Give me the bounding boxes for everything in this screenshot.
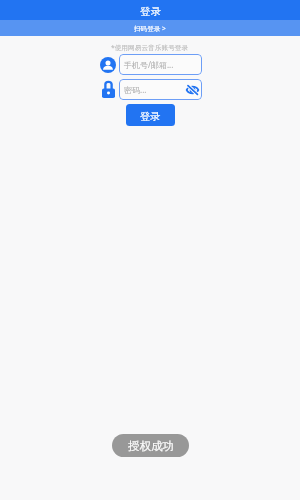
staticText: 手机号/邮箱... (124, 59, 174, 70)
button[interactable]: 手机号/邮箱... (119, 54, 202, 75)
staticText: 登录 (140, 5, 161, 18)
staticText: 授权成功 (128, 439, 174, 453)
button[interactable]: 登录 (126, 104, 175, 126)
staticText: 登录 (140, 110, 161, 123)
other: Account (100, 57, 116, 73)
staticText: 密码... (124, 84, 147, 95)
button[interactable]: 扫码登录 > (0, 20, 300, 36)
button[interactable]: 密码... (119, 79, 202, 100)
button[interactable]: Show password (185, 83, 199, 97)
other: Password (100, 82, 116, 98)
staticText: 扫码登录 > (134, 24, 166, 33)
staticText: *使用网易云音乐账号登录 (111, 43, 189, 52)
